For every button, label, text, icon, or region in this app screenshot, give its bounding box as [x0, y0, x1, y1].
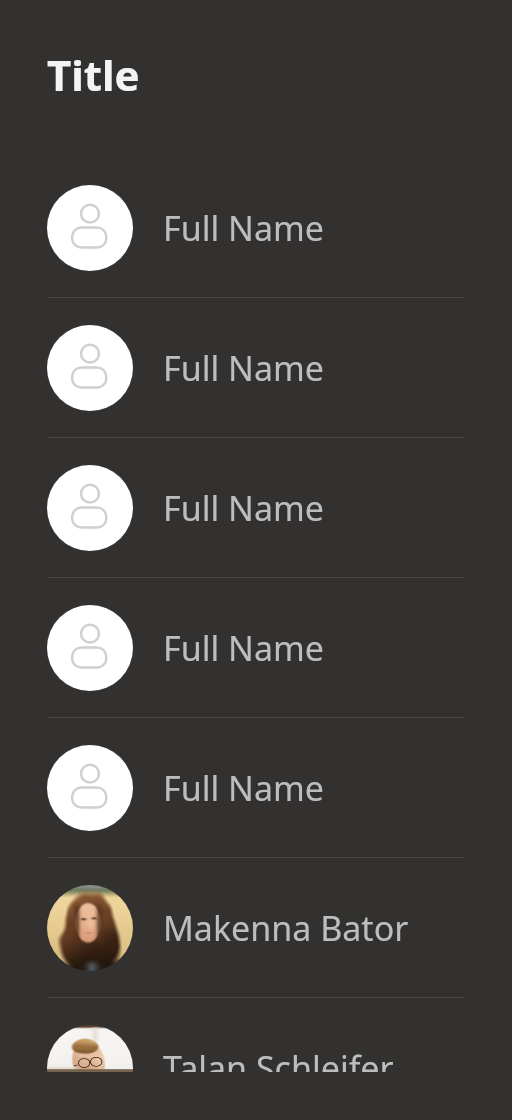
staticText: Title [47, 46, 140, 103]
other: Default profile picture [47, 185, 133, 271]
button[interactable]: Talan Schleifer profile photo [0, 998, 512, 1072]
other: Default profile picture [47, 745, 133, 831]
button[interactable]: Makenna Bator profile photo [0, 858, 512, 997]
button[interactable]: Default profile picture [0, 718, 512, 857]
other: Default profile picture [47, 605, 133, 691]
staticText: Full Name [163, 625, 324, 671]
staticText: Full Name [163, 485, 324, 531]
button[interactable]: Default profile picture [0, 158, 512, 297]
staticText: Full Name [163, 205, 324, 251]
button[interactable]: Default profile picture [0, 298, 512, 437]
button[interactable]: Default profile picture [0, 578, 512, 717]
other: Default profile picture [47, 465, 133, 551]
staticText: Talan Schleifer [163, 1045, 394, 1072]
button[interactable]: Default profile picture [0, 438, 512, 577]
staticText: Full Name [163, 345, 324, 391]
image: Talan Schleifer profile photo [47, 1025, 133, 1072]
staticText: Full Name [163, 765, 324, 811]
image: Makenna Bator profile photo [47, 885, 133, 971]
staticText: Makenna Bator [163, 905, 409, 951]
other: Default profile picture [47, 325, 133, 411]
